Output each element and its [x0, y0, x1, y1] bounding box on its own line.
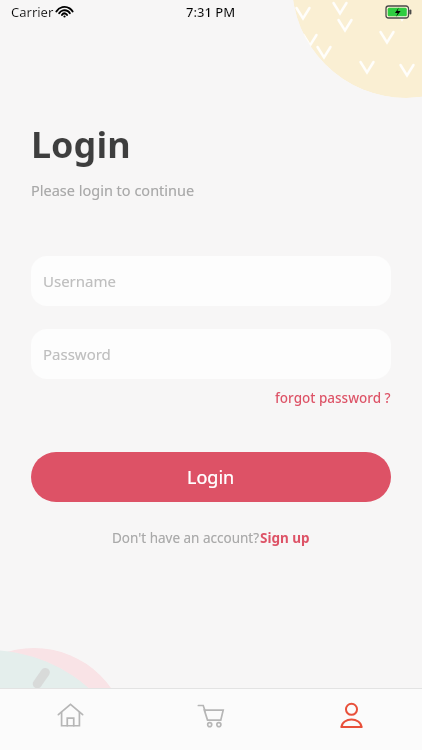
staticText: Sign up [260, 529, 310, 547]
button[interactable]: Username [31, 256, 391, 306]
staticText: Login [31, 120, 131, 169]
button[interactable]: Password [31, 329, 391, 379]
staticText: Please login to continue [31, 180, 195, 200]
button[interactable]: forgot password ? [265, 387, 422, 409]
staticText: 7:31 PM [186, 3, 236, 21]
button[interactable]: Profile [281, 689, 422, 750]
staticText: Carrier [11, 3, 54, 21]
button[interactable]: Home [0, 689, 140, 750]
button[interactable]: Login [31, 452, 391, 502]
staticText: Don't have an account? [112, 529, 260, 547]
staticText: Login [187, 465, 235, 490]
staticText: forgot password ? [275, 389, 391, 407]
button[interactable]: Sign up [260, 529, 310, 547]
staticText: Username [43, 271, 116, 291]
button[interactable]: Cart [140, 689, 281, 750]
staticText: Password [43, 344, 111, 364]
